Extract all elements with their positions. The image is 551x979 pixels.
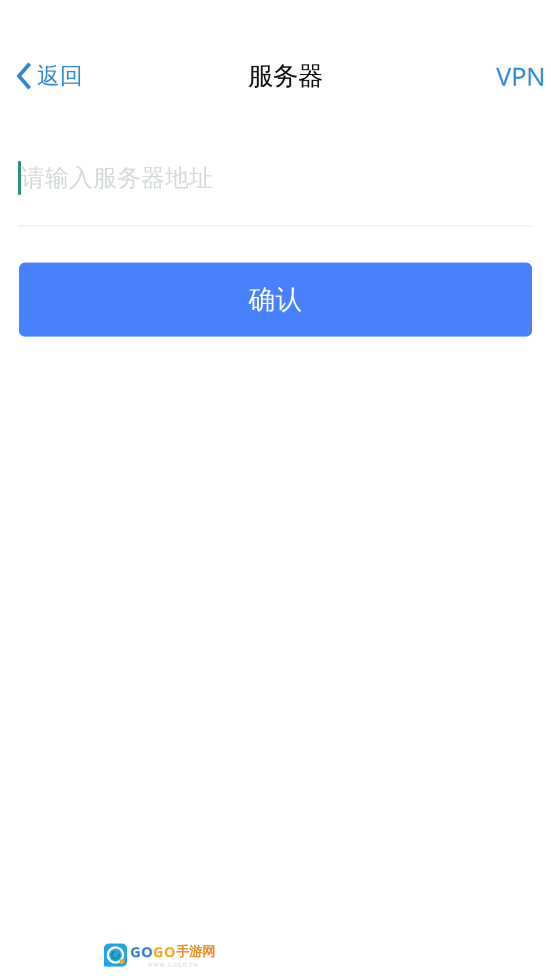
staticText: 返回 bbox=[37, 62, 83, 90]
staticText: GO bbox=[130, 942, 153, 961]
staticText: GO bbox=[153, 942, 176, 961]
staticText: VPN bbox=[496, 59, 545, 93]
button[interactable]: 确认 bbox=[19, 263, 532, 337]
button[interactable]: 请输入服务器地址 bbox=[0, 156, 551, 200]
staticText: W W W . G O G O . C N bbox=[147, 961, 197, 968]
staticText: 服务器 bbox=[248, 60, 323, 91]
button[interactable]: 返回 bbox=[0, 48, 93, 104]
staticText: 请输入服务器地址 bbox=[21, 163, 213, 193]
button[interactable]: VPN bbox=[496, 48, 551, 104]
staticText: 手游网 bbox=[176, 943, 215, 960]
staticText: 确认 bbox=[248, 283, 302, 316]
